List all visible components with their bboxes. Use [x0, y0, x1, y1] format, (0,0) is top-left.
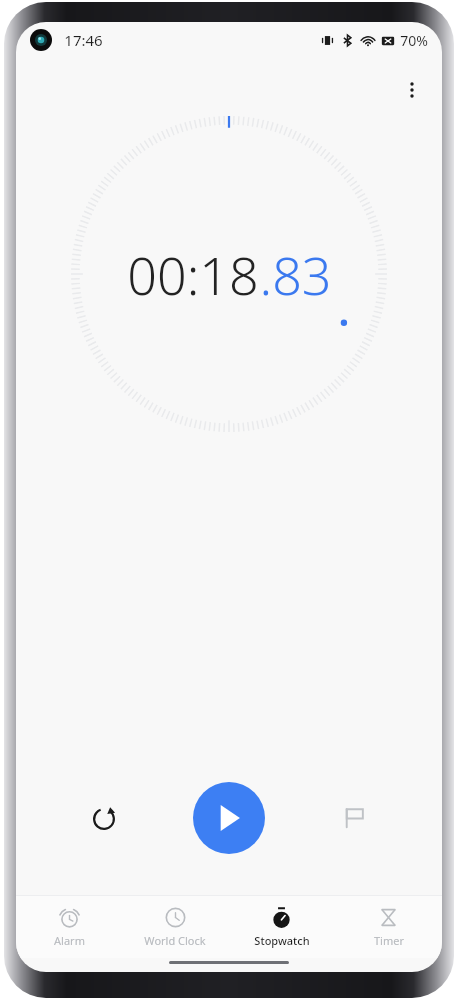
button[interactable]: More options [388, 66, 436, 114]
staticText: 00:18 [127, 239, 259, 310]
button[interactable]: Stopwatch [228, 896, 335, 958]
button[interactable]: World Clock [122, 896, 228, 958]
button[interactable]: Timer [335, 896, 442, 958]
button[interactable]: Start [193, 782, 265, 854]
button[interactable]: Alarm [16, 896, 122, 958]
staticText: Timer [374, 933, 404, 948]
staticText: Alarm [54, 933, 85, 948]
staticText: World Clock [144, 933, 206, 948]
button[interactable]: Reset [76, 790, 132, 846]
button[interactable]: Lap [326, 790, 382, 846]
staticText: Stopwatch [254, 933, 310, 948]
staticText: 17:46 [64, 30, 103, 50]
staticText: .83 [259, 239, 332, 310]
staticText: 70% [400, 31, 428, 50]
